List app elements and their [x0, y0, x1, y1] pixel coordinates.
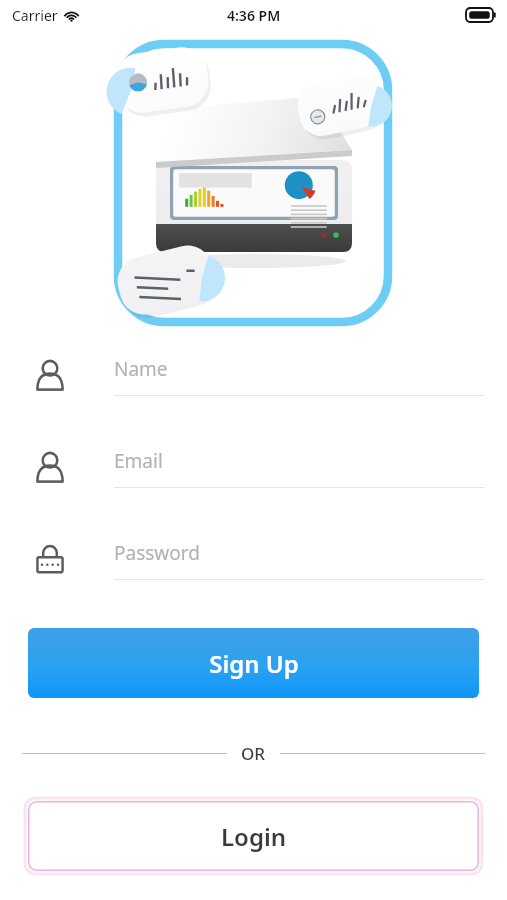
staticText: OR: [241, 742, 266, 765]
staticText: Sign Up: [209, 647, 299, 680]
staticText: Password: [114, 540, 200, 566]
button[interactable]: Name: [0, 356, 507, 412]
button[interactable]: Sign Up: [28, 628, 479, 698]
button[interactable]: Password: [0, 540, 507, 596]
staticText: 4:36 PM: [227, 6, 281, 25]
staticText: Login: [221, 820, 287, 853]
staticText: Carrier: [12, 6, 58, 25]
staticText: Name: [114, 356, 168, 382]
staticText: Email: [114, 448, 163, 474]
button[interactable]: Login: [28, 801, 479, 871]
button[interactable]: Email: [0, 448, 507, 504]
